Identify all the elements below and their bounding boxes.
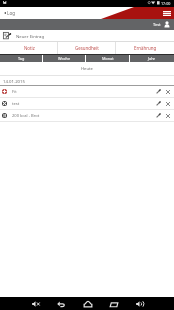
staticText: Notiz — [24, 45, 35, 51]
button[interactable]: Edit — [154, 98, 163, 109]
staticText: 17:00 — [161, 1, 171, 6]
button[interactable]: Fit — [0, 86, 174, 97]
button[interactable]: Monat — [86, 55, 130, 62]
staticText: Gesundheit — [75, 45, 99, 51]
button[interactable]: Recents — [103, 297, 125, 310]
button[interactable]: Delete — [163, 98, 172, 109]
button[interactable]: Log — [0, 7, 20, 19]
button[interactable]: Volume up — [129, 297, 151, 310]
button[interactable]: Woche — [43, 55, 86, 62]
button[interactable]: Ernährung — [116, 42, 174, 54]
button[interactable]: Neuer Eintrag — [0, 30, 174, 41]
button[interactable]: Edit — [154, 86, 163, 97]
staticText: Jahr — [148, 56, 156, 61]
button[interactable]: Menu — [162, 7, 172, 19]
staticText: test — [12, 101, 20, 107]
button[interactable]: Notiz — [0, 42, 58, 54]
staticText: Monat — [102, 56, 114, 61]
staticText: Test — [153, 22, 161, 27]
staticText: 200 kcal - Brot — [12, 113, 40, 119]
staticText: 14.01.2015 — [3, 78, 25, 84]
button[interactable]: Edit — [154, 110, 163, 121]
staticText: Heute — [81, 66, 93, 72]
button[interactable]: Delete — [163, 86, 172, 97]
button[interactable]: Tag — [0, 55, 43, 62]
button[interactable]: Delete — [163, 110, 172, 121]
button[interactable]: Volume down — [25, 297, 47, 310]
staticText: Log — [7, 10, 16, 16]
staticText: Neuer Eintrag — [16, 33, 45, 39]
staticText: Woche — [58, 56, 71, 61]
button[interactable]: 200 kcal - Brot — [0, 110, 174, 121]
button[interactable]: Jahr — [130, 55, 174, 62]
button[interactable]: Back — [50, 297, 72, 310]
staticText: Tag — [18, 56, 25, 61]
button[interactable]: test — [0, 98, 174, 109]
staticText: Ernährung — [134, 45, 157, 51]
button[interactable]: Gesundheit — [58, 42, 116, 54]
button[interactable]: Test — [149, 19, 174, 30]
button[interactable]: Home — [77, 297, 99, 310]
staticText: Fit — [12, 89, 17, 95]
